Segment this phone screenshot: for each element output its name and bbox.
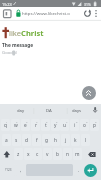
button[interactable]: o — [80, 119, 89, 131]
staticText: , — [20, 167, 22, 173]
button[interactable]: h — [51, 134, 60, 146]
button[interactable]: s — [12, 134, 21, 146]
button[interactable]: DA — [36, 106, 61, 116]
staticText: day — [17, 108, 25, 114]
staticText: l — [85, 137, 87, 144]
button[interactable]: r — [31, 119, 40, 131]
button[interactable]: day — [8, 106, 34, 116]
button[interactable]: days — [64, 106, 89, 116]
staticText: 31% — [84, 2, 91, 7]
staticText: p — [93, 122, 96, 129]
button[interactable]: k — [71, 134, 80, 146]
staticText: j — [65, 137, 67, 144]
staticText: The message — [2, 42, 34, 49]
button[interactable]: , — [16, 164, 25, 176]
staticText: 1 — [6, 120, 8, 123]
button[interactable]: y — [51, 119, 60, 131]
staticText: b — [56, 151, 59, 158]
button[interactable]: Good d — [2, 49, 17, 55]
staticText: DA — [46, 108, 52, 114]
button[interactable]: i — [70, 119, 79, 131]
button[interactable] — [93, 8, 101, 19]
button[interactable]: a — [2, 134, 11, 146]
button[interactable] — [0, 7, 101, 20]
button[interactable]: x — [24, 148, 33, 160]
staticText: d — [25, 137, 28, 144]
staticText: y — [54, 122, 57, 129]
button[interactable]: b — [53, 148, 62, 160]
button[interactable]: z — [14, 148, 23, 160]
staticText: v — [46, 151, 49, 158]
staticText: c — [36, 151, 39, 158]
staticText: u — [63, 122, 66, 129]
button[interactable]: n — [63, 148, 72, 160]
button[interactable] — [85, 148, 99, 160]
button[interactable]: f — [32, 134, 41, 146]
staticText: o — [83, 122, 86, 129]
staticText: g — [45, 137, 48, 144]
staticText: 8 — [76, 120, 78, 123]
button[interactable]: u — [60, 119, 69, 131]
button[interactable] — [1, 148, 13, 160]
staticText: m — [75, 151, 80, 158]
staticText: 3 — [26, 120, 28, 123]
staticText: z — [17, 151, 20, 158]
button[interactable] — [2, 8, 12, 19]
button[interactable] — [84, 164, 97, 177]
button[interactable] — [82, 8, 93, 19]
staticText: t — [45, 122, 47, 129]
button[interactable]: j — [61, 134, 70, 146]
button[interactable]: g — [42, 134, 51, 146]
staticText: 9 — [86, 120, 88, 123]
staticText: r — [35, 122, 37, 129]
staticText: . — [78, 167, 80, 173]
button[interactable] — [82, 86, 96, 100]
button[interactable]: likeChrist — [9, 28, 44, 38]
button[interactable]: p — [90, 119, 99, 131]
button[interactable]: ?123 — [1, 164, 15, 176]
staticText: h — [54, 137, 57, 144]
button[interactable]: . — [74, 164, 83, 176]
button[interactable]: q — [1, 119, 10, 131]
staticText: 5 — [46, 120, 48, 123]
staticText: days — [72, 108, 82, 114]
staticText: a — [5, 137, 8, 144]
staticText: k — [74, 137, 77, 144]
button[interactable]: w — [11, 119, 20, 131]
staticText: q — [4, 122, 7, 129]
staticText: 15:23 — [2, 2, 12, 7]
button[interactable]: l — [81, 134, 90, 146]
button[interactable]: https://www.likechrist.o — [22, 10, 70, 16]
button[interactable]: t — [41, 119, 50, 131]
button[interactable]: d — [22, 134, 31, 146]
staticText: 2 — [16, 120, 18, 123]
staticText: f — [36, 137, 38, 144]
staticText: 6 — [56, 120, 58, 123]
staticText: s — [15, 137, 18, 144]
staticText: 7 — [66, 120, 68, 123]
staticText: w — [14, 122, 18, 129]
staticText: 0 — [95, 120, 97, 123]
staticText: ?123 — [5, 168, 12, 172]
staticText: n — [66, 151, 69, 158]
button[interactable] — [90, 105, 100, 116]
button[interactable]: v — [43, 148, 52, 160]
button[interactable]: c — [33, 148, 42, 160]
staticText: 4 — [36, 120, 38, 123]
staticText: i — [74, 122, 76, 129]
button[interactable]: e — [21, 119, 30, 131]
staticText: x — [27, 151, 30, 158]
staticText: e — [24, 122, 27, 129]
button[interactable]: m — [73, 148, 82, 160]
